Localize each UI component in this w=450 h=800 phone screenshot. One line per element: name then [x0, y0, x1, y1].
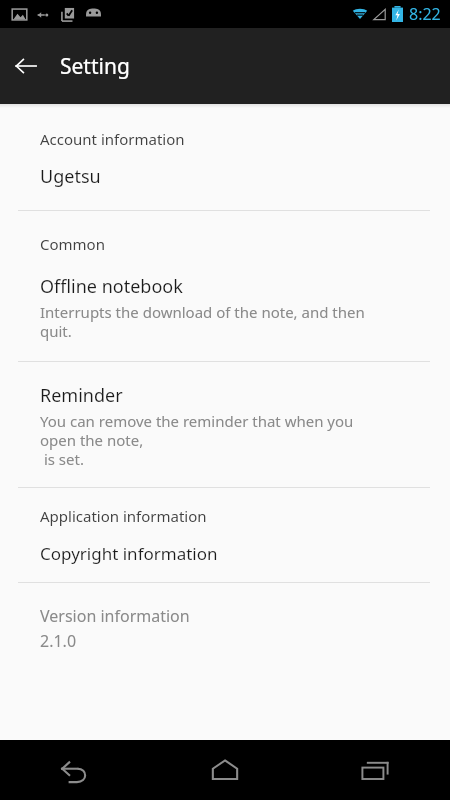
staticText: 8:22 [409, 3, 441, 25]
staticText: 2.1.0 [40, 630, 77, 652]
staticText: Copyright information [40, 542, 218, 565]
staticText: You can remove the reminder that when yo… [40, 411, 354, 469]
staticText: Ugetsu [40, 164, 101, 189]
button[interactable]: Back [0, 740, 150, 800]
staticText: Version information [40, 605, 190, 627]
button[interactable]: Ugetsu [0, 164, 450, 189]
staticText: Interrupts the download of the note, and… [40, 302, 365, 341]
staticText: Common [40, 234, 105, 254]
button[interactable]: Reminder [0, 383, 450, 469]
button[interactable]: Copyright information [0, 542, 450, 565]
button[interactable]: Back [0, 40, 52, 92]
button[interactable]: Offline notebook [0, 274, 450, 341]
button[interactable]: Recent apps [300, 740, 450, 800]
staticText: Application information [40, 506, 207, 526]
staticText: Offline notebook [40, 274, 183, 299]
staticText: Account information [40, 129, 185, 149]
staticText: Setting [60, 52, 130, 81]
staticText: Reminder [40, 383, 123, 408]
button[interactable]: Home [150, 740, 300, 800]
